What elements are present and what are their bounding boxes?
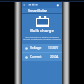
button[interactable]: Current (22, 53, 62, 61)
staticText: 13.50V (48, 46, 59, 50)
staticText: The battery is being charged at the maxi… (23, 35, 61, 41)
staticText: SmartSolar (28, 8, 48, 13)
staticText: 20.0A (50, 55, 59, 59)
staticText: Current (30, 55, 42, 59)
other: Battery status (36, 16, 49, 27)
button[interactable]: Voltage (22, 44, 62, 52)
button[interactable]: SmartSolar (22, 8, 62, 13)
staticText: Voltage (30, 46, 42, 50)
staticText: Bulk charge (22, 28, 62, 34)
